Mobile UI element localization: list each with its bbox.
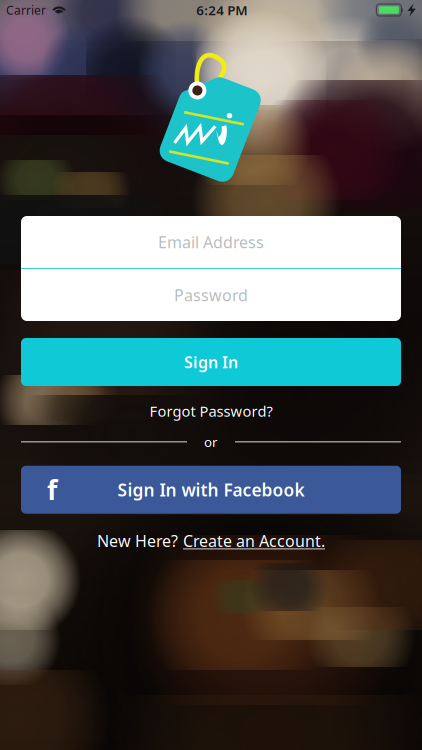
staticText: f bbox=[47, 472, 57, 507]
staticText: Password bbox=[174, 284, 248, 306]
staticText: 6:24 PM bbox=[196, 1, 247, 19]
staticText: Create an Account. bbox=[183, 530, 325, 551]
staticText: Carrier bbox=[6, 2, 46, 18]
button[interactable]: Sign In with Facebook bbox=[21, 466, 401, 514]
button[interactable]: Forgot Password? bbox=[21, 400, 401, 422]
staticText: Sign In with Facebook bbox=[117, 478, 304, 501]
staticText: New Here? bbox=[97, 530, 178, 551]
staticText: Forgot Password? bbox=[149, 401, 272, 421]
button[interactable]: New Here? bbox=[21, 530, 401, 552]
staticText: Sign In bbox=[184, 351, 238, 373]
staticText: Email Address bbox=[158, 231, 264, 253]
button[interactable]: Sign In bbox=[21, 338, 401, 386]
staticText: or bbox=[204, 433, 218, 451]
